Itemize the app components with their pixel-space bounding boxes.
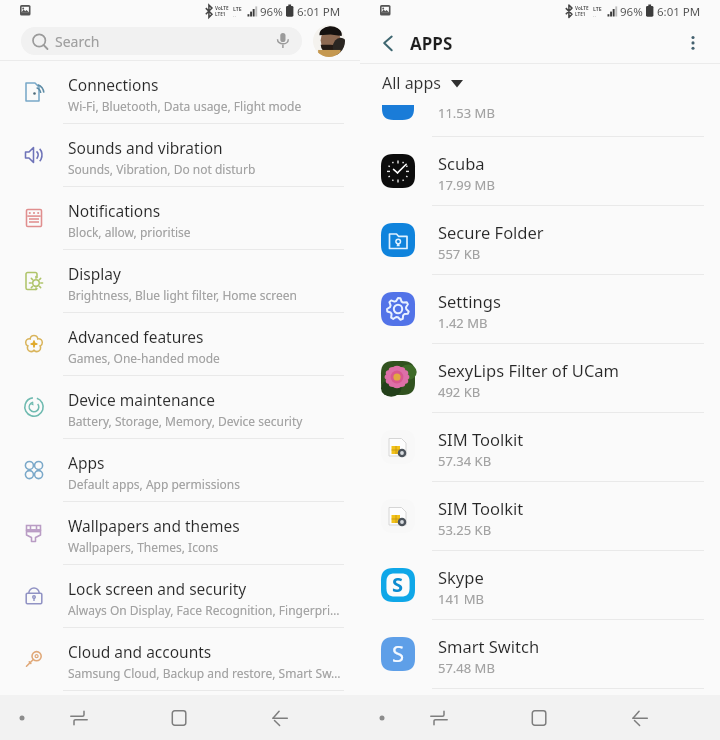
staticText: Apps xyxy=(68,452,105,473)
staticText: Wallpapers and themes xyxy=(68,515,240,536)
staticText: 6:01 PM xyxy=(657,4,701,20)
staticText: 1.42 MB xyxy=(438,314,488,332)
staticText: VoLTE xyxy=(215,5,229,11)
staticText: Advanced features xyxy=(68,326,204,347)
button[interactable]: Back xyxy=(619,697,661,739)
button[interactable]: SIM Toolkit xyxy=(360,413,720,482)
staticText: LTE1 xyxy=(575,11,586,17)
staticText: Lock screen and security xyxy=(68,578,247,599)
button[interactable]: S xyxy=(360,620,720,689)
staticText: Cloud and accounts xyxy=(68,641,212,662)
staticText: All apps xyxy=(382,72,441,94)
button[interactable]: Back xyxy=(259,697,301,739)
staticText: Settings xyxy=(438,290,501,312)
staticText: Sounds, Vibration, Do not disturb xyxy=(68,161,256,177)
staticText: Search xyxy=(55,32,100,51)
button[interactable]: Recents xyxy=(58,697,100,739)
button[interactable]: Recents xyxy=(418,697,460,739)
staticText: S xyxy=(392,571,404,598)
button[interactable]: Home xyxy=(518,697,560,739)
button[interactable]: Profile xyxy=(313,25,345,57)
staticText: LTE xyxy=(233,5,242,12)
button[interactable]: 11.53 MB xyxy=(360,105,720,137)
staticText: Battery, Storage, Memory, Device securit… xyxy=(68,413,303,429)
staticText: Default apps, App permissions xyxy=(68,476,240,492)
button[interactable]: Lock screen and security xyxy=(0,565,360,628)
button[interactable]: Wallpapers and themes xyxy=(0,502,360,565)
staticText: ·· xyxy=(593,12,596,19)
staticText: VoLTE xyxy=(575,5,589,11)
staticText: 57.34 KB xyxy=(438,452,492,470)
staticText: 53.25 KB xyxy=(438,521,492,539)
button[interactable]: Secure Folder xyxy=(360,206,720,275)
button[interactable]: SexyLips Filter of UCam xyxy=(360,344,720,413)
staticText: Connections xyxy=(68,74,159,95)
staticText: Wallpapers, Themes, Icons xyxy=(68,539,219,555)
staticText: Scuba xyxy=(438,152,485,174)
staticText: Skype xyxy=(438,566,484,588)
staticText: SIM Toolkit xyxy=(438,428,524,450)
staticText: Always On Display, Face Recognition, Fin… xyxy=(68,602,340,618)
staticText: S xyxy=(392,638,405,668)
staticText: Sounds and vibration xyxy=(68,137,223,158)
staticText: SexyLips Filter of UCam xyxy=(438,359,619,381)
staticText: Brightness, Blue light filter, Home scre… xyxy=(68,287,297,303)
button[interactable]: Search xyxy=(21,27,302,55)
staticText: Secure Folder xyxy=(438,221,544,243)
button[interactable]: Connections xyxy=(0,61,360,124)
staticText: Device maintenance xyxy=(68,389,215,410)
button[interactable]: Notifications xyxy=(0,187,360,250)
button[interactable]: Scuba xyxy=(360,137,720,206)
staticText: LTE xyxy=(593,5,602,12)
staticText: 6:01 PM xyxy=(297,4,341,20)
staticText: Samsung Cloud, Backup and restore, Smart… xyxy=(68,665,341,681)
button[interactable]: All apps xyxy=(382,72,463,94)
button[interactable]: Hide navigation bar xyxy=(361,697,403,739)
button[interactable]: More options xyxy=(673,23,713,63)
button[interactable]: SIM Toolkit xyxy=(360,482,720,551)
button[interactable]: Device maintenance xyxy=(0,376,360,439)
button[interactable]: Sounds and vibration xyxy=(0,124,360,187)
staticText: 96% xyxy=(260,4,283,20)
staticText: APPS xyxy=(410,32,453,55)
button[interactable]: Home xyxy=(158,697,200,739)
button[interactable]: Back xyxy=(364,23,404,63)
staticText: 96% xyxy=(620,4,643,20)
staticText: 492 KB xyxy=(438,383,481,401)
staticText: 141 MB xyxy=(438,590,484,608)
staticText: Smart Switch xyxy=(438,635,540,657)
staticText: Games, One-handed mode xyxy=(68,350,220,366)
button[interactable]: Apps xyxy=(0,439,360,502)
staticText: LTE1 xyxy=(215,11,226,17)
staticText: 17.99 MB xyxy=(438,176,495,194)
button[interactable]: Advanced features xyxy=(0,313,360,376)
staticText: 57.48 MB xyxy=(438,659,495,677)
staticText: SIM Toolkit xyxy=(438,497,524,519)
staticText: Notifications xyxy=(68,200,161,221)
staticText: ·· xyxy=(233,12,236,19)
staticText: Block, allow, prioritise xyxy=(68,224,191,240)
button[interactable]: Hide navigation bar xyxy=(1,697,43,739)
staticText: 11.53 MB xyxy=(438,105,495,122)
button[interactable]: Display xyxy=(0,250,360,313)
staticText: Wi-Fi, Bluetooth, Data usage, Flight mod… xyxy=(68,98,302,114)
button[interactable]: S xyxy=(360,551,720,620)
button[interactable]: Cloud and accounts xyxy=(0,628,360,691)
staticText: Display xyxy=(68,263,121,284)
button[interactable]: Settings xyxy=(360,275,720,344)
staticText: 557 KB xyxy=(438,245,481,263)
